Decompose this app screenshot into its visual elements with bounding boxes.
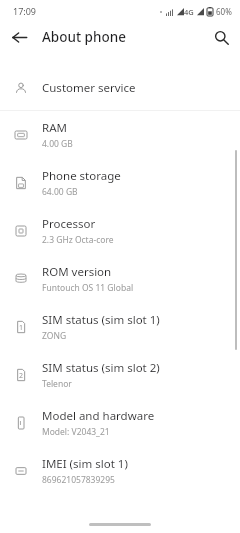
staticText: SIM status (sim slot 1) <box>42 312 160 328</box>
staticText: RAM <box>42 120 67 136</box>
staticText: 4.00 GB <box>42 138 73 150</box>
staticText: Telenor <box>42 378 72 390</box>
staticText: About phone <box>42 28 126 46</box>
staticText: Funtouch OS 11 Global <box>42 282 134 294</box>
staticText: SIM status (sim slot 2) <box>42 360 160 376</box>
staticText: 17:09 <box>13 5 37 17</box>
staticText: IMEI (sim slot 1) <box>42 456 128 472</box>
button[interactable]: RAM <box>0 111 240 159</box>
button[interactable]: 1 <box>0 303 240 351</box>
staticText: 1 <box>19 323 24 333</box>
staticText: Model: V2043_21 <box>42 426 110 438</box>
staticText: 869621057839295 <box>42 474 115 486</box>
button[interactable]: Model and hardware <box>0 399 240 447</box>
button[interactable]: Processor <box>0 207 240 255</box>
staticText: Processor <box>42 216 96 232</box>
staticText: Model and hardware <box>42 408 155 424</box>
staticText: 64.00 GB <box>42 186 78 198</box>
staticText: Customer service <box>42 80 136 96</box>
button[interactable]: IMEI (sim slot 1) <box>0 447 240 495</box>
button[interactable]: Customer service <box>0 66 240 110</box>
button[interactable]: Search <box>209 25 233 49</box>
staticText: 2 <box>19 371 24 381</box>
staticText: 4G <box>184 7 194 17</box>
staticText: 2.3 GHz Octa-core <box>42 234 114 246</box>
button[interactable]: Phone storage <box>0 159 240 207</box>
button[interactable]: ROM version <box>0 255 240 303</box>
staticText: 60% <box>216 6 232 17</box>
button[interactable]: 2 <box>0 351 240 399</box>
button[interactable]: Back <box>7 25 31 49</box>
staticText: ROM version <box>42 264 112 280</box>
staticText: Phone storage <box>42 168 121 184</box>
staticText: ZONG <box>42 330 67 342</box>
